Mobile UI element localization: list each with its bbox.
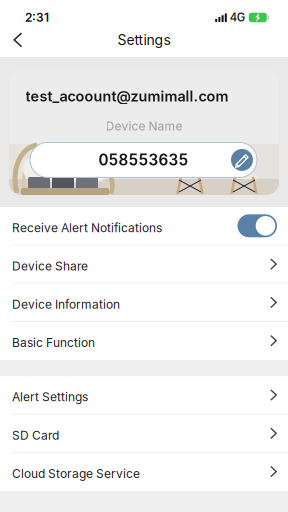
- staticText: SD Card: [12, 428, 59, 442]
- staticText: Device Name: [105, 119, 182, 133]
- button[interactable]: Receive Alert Notifications: [0, 207, 288, 245]
- button[interactable]: SD Card: [0, 414, 288, 453]
- button[interactable]: Basic Function: [0, 322, 288, 360]
- button[interactable]: Alert Settings: [0, 376, 288, 414]
- button[interactable]: Back: [0, 26, 37, 54]
- staticText: Basic Function: [12, 335, 95, 350]
- button[interactable]: Cloud Storage Service: [0, 453, 288, 491]
- staticText: Device Share: [12, 259, 88, 273]
- button[interactable]: Device Share: [0, 245, 288, 284]
- staticText: 2:31: [25, 10, 49, 25]
- button[interactable]: Device Information: [0, 284, 288, 322]
- staticText: 4G: [230, 11, 245, 24]
- staticText: Cloud Storage Service: [12, 466, 140, 481]
- button[interactable]: Edit device name: [227, 145, 257, 175]
- staticText: 058553635: [98, 151, 188, 169]
- staticText: Settings: [117, 31, 170, 48]
- staticText: Device Information: [12, 297, 120, 312]
- staticText: Alert Settings: [12, 390, 88, 404]
- staticText: test_acoount@zumimall.com: [25, 87, 228, 105]
- staticText: Receive Alert Notifications: [12, 220, 162, 235]
